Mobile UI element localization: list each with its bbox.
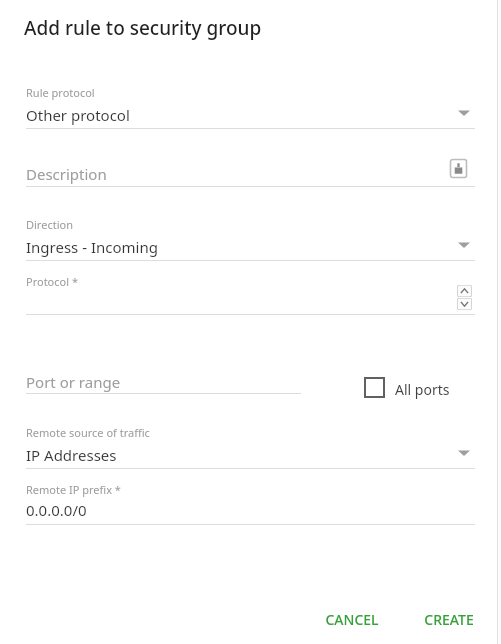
button[interactable]: CANCEL xyxy=(313,602,391,636)
other: Open dropdown xyxy=(458,241,470,249)
staticText: Direction xyxy=(26,217,73,232)
other: Open dropdown xyxy=(458,449,470,457)
button[interactable]: CREATE xyxy=(411,602,486,636)
staticText: Remote source of traffic xyxy=(26,425,150,440)
button[interactable] xyxy=(26,366,301,394)
button[interactable] xyxy=(26,424,475,469)
staticText: CREATE xyxy=(424,610,474,629)
staticText: Rule protocol xyxy=(26,85,95,100)
staticText: Add rule to security group xyxy=(24,15,262,41)
button[interactable] xyxy=(26,216,475,261)
staticText: Ingress - Incoming xyxy=(26,237,158,257)
staticText: Other protocol xyxy=(26,105,130,125)
button[interactable]: All ports xyxy=(365,375,465,401)
staticText: Protocol * xyxy=(26,274,78,289)
button[interactable] xyxy=(26,480,475,525)
staticText: CANCEL xyxy=(325,610,379,629)
button[interactable]: Expand description xyxy=(449,158,468,179)
staticText: All ports xyxy=(395,380,450,399)
staticText: Description xyxy=(26,164,107,184)
other: Open dropdown xyxy=(458,109,470,117)
button[interactable]: Decrease protocol xyxy=(457,298,472,310)
button[interactable] xyxy=(26,272,445,314)
staticText: Port or range xyxy=(26,372,121,392)
staticText: 0.0.0.0/0 xyxy=(26,500,87,520)
button[interactable] xyxy=(26,158,445,186)
button[interactable] xyxy=(26,84,475,129)
staticText: Remote IP prefix * xyxy=(26,482,121,497)
button[interactable]: Increase protocol xyxy=(457,285,472,297)
staticText: IP Addresses xyxy=(26,445,117,465)
